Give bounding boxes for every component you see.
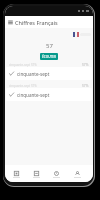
staticText: 57% bbox=[82, 63, 89, 67]
staticText: cinquante-sept bbox=[17, 92, 50, 98]
staticText: 57 bbox=[46, 42, 53, 50]
button[interactable]: cinquante-sept bbox=[6, 88, 92, 101]
button[interactable]: Menu bbox=[5, 16, 15, 28]
button[interactable]: Language French bbox=[73, 32, 79, 37]
staticText: ÉCOUTER bbox=[42, 55, 57, 59]
staticText: Chiffres Français bbox=[15, 19, 58, 26]
button[interactable]: Profile bbox=[67, 165, 88, 182]
staticText: cinquante-sept 57% bbox=[9, 84, 37, 88]
button[interactable]: Learn bbox=[6, 165, 26, 182]
button[interactable]: cinquante-sept bbox=[6, 67, 92, 80]
staticText: cinquante-sept 57% bbox=[9, 63, 37, 67]
staticText: cinquante-sept bbox=[17, 71, 50, 77]
button[interactable]: ÉCOUTER bbox=[40, 53, 58, 60]
staticText: 57% bbox=[82, 84, 89, 88]
button[interactable]: Practice bbox=[26, 165, 46, 182]
button[interactable]: Quiz bbox=[46, 165, 67, 182]
